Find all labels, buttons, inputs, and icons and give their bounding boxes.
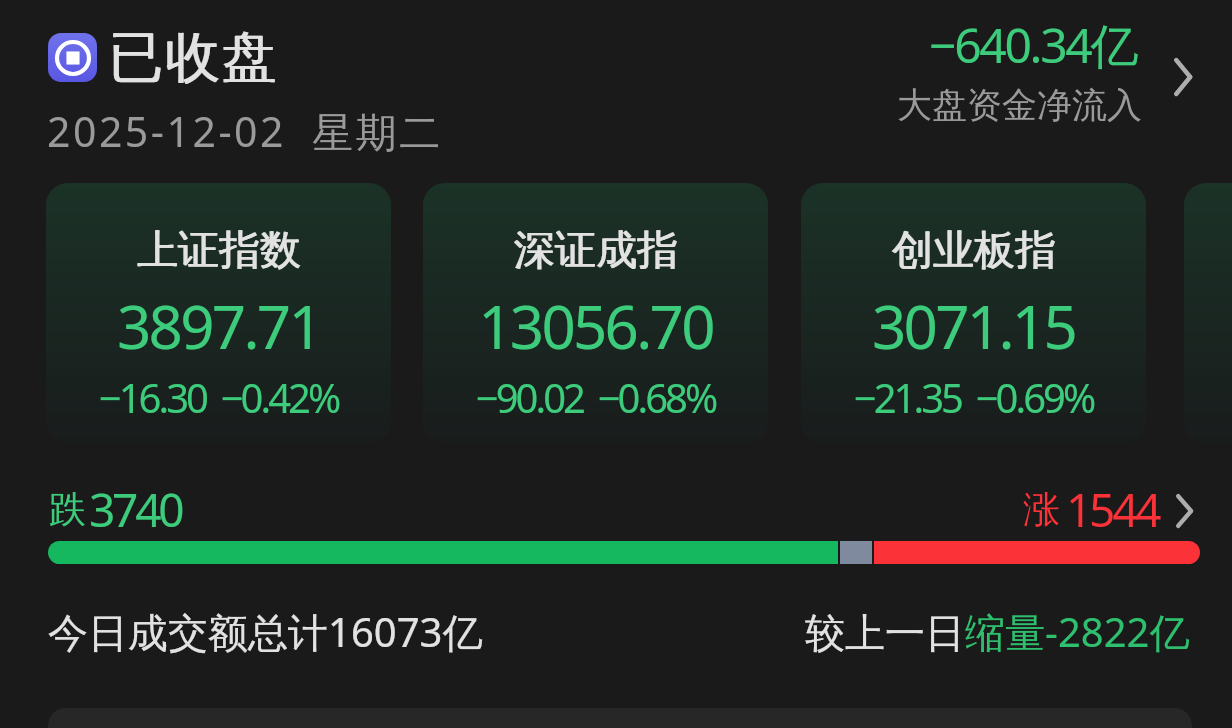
staticText: −90.02 −0.68% bbox=[423, 370, 768, 424]
staticText: 跌 bbox=[49, 486, 86, 533]
staticText: −21.35 −0.69% bbox=[801, 370, 1146, 424]
staticText: −640.34亿 bbox=[929, 12, 1137, 78]
staticText: 创业板指 bbox=[801, 225, 1146, 277]
staticText: 3071.15 bbox=[801, 285, 1146, 367]
other: Rise and fall details bbox=[1176, 494, 1193, 528]
other: Capital flow details bbox=[1174, 58, 1192, 96]
staticText: 深证成指 bbox=[424, 225, 768, 277]
staticText: 已收盘 bbox=[109, 23, 279, 92]
staticText: 涨 bbox=[1023, 486, 1060, 533]
button[interactable]: 上证指数 bbox=[46, 183, 391, 443]
button[interactable]: Market status bbox=[48, 23, 278, 92]
staticText: 已收盘 bbox=[108, 23, 278, 92]
staticText: −16.30 −0.42% bbox=[46, 370, 391, 424]
staticText: 3740 bbox=[89, 478, 182, 541]
button[interactable]: 深证成指 bbox=[423, 183, 768, 443]
staticText: 创业板指 bbox=[802, 225, 1146, 277]
button[interactable]: 跌 bbox=[0, 473, 1232, 573]
staticText: 上证指数 bbox=[46, 225, 391, 277]
button[interactable]: −640.34亿 bbox=[841, 12, 1191, 132]
other: Market status bbox=[48, 33, 97, 82]
button[interactable]: 科创50 bbox=[1184, 183, 1232, 443]
staticText: 今日成交额总计16073亿 bbox=[48, 604, 483, 659]
staticText: 2025-12-02 星期二 bbox=[47, 103, 443, 159]
staticText: 大盘资金净流入 bbox=[897, 83, 1142, 127]
staticText: 上证指数 bbox=[47, 225, 391, 277]
staticText: 13056.70 bbox=[423, 285, 768, 367]
staticText: 较上一日缩量-2822亿 bbox=[805, 604, 1190, 659]
staticText: 3897.71 bbox=[46, 285, 391, 367]
button[interactable]: 创业板指 bbox=[801, 183, 1146, 443]
staticText: 1544 bbox=[1066, 478, 1159, 541]
staticText: 深证成指 bbox=[423, 225, 768, 277]
